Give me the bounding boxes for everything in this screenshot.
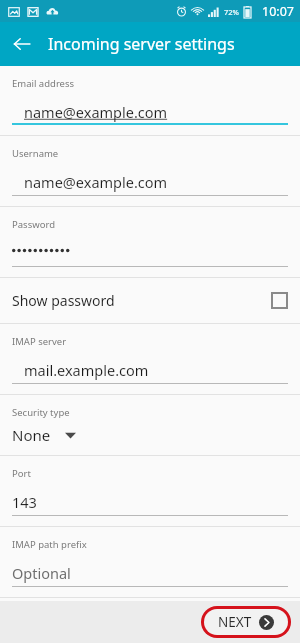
staticText: Email address [12,77,75,90]
button[interactable]: Security type None dropdown [0,395,300,455]
staticText: mail.example.com [24,360,149,380]
button[interactable]: Back [0,22,44,66]
staticText: 72% [224,7,239,17]
button[interactable]: Email address [0,66,300,135]
button[interactable]: IMAP server [0,324,300,394]
staticText: 143 [12,492,37,512]
staticText: None [12,425,51,445]
staticText: 10:07 [262,3,294,20]
button[interactable]: NEXT [204,609,288,635]
staticText: NEXT [218,613,252,631]
staticText: IMAP server [12,335,67,348]
staticText: IMAP path prefix [12,538,87,551]
button[interactable]: Show password [0,278,300,323]
staticText: Password [12,218,55,231]
staticText: Port [12,467,31,480]
button[interactable]: IMAP path prefix [0,527,300,597]
staticText: name@example.com [24,172,168,192]
staticText: Incoming server settings [48,33,235,55]
button[interactable]: Port [0,456,300,526]
other: Show password checkbox [271,292,288,309]
staticText: Show password [12,291,115,310]
staticText: Username [12,147,59,160]
button[interactable]: Username [0,136,300,206]
button[interactable]: Password [0,207,300,277]
staticText: Security type [12,406,70,419]
staticText: Optional [12,563,71,583]
staticText: name@example.com [24,102,168,122]
